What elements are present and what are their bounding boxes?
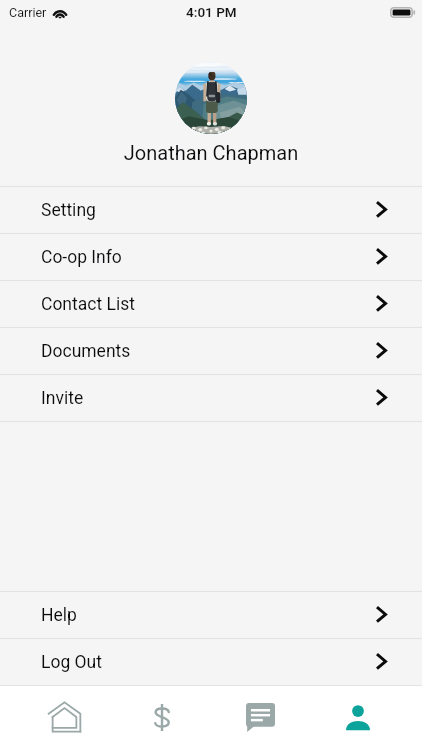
staticText: 4:01 PM (186, 4, 237, 20)
button[interactable]: Invite (0, 375, 422, 421)
staticText: Help (41, 605, 77, 626)
button[interactable]: Help (0, 592, 422, 638)
staticText: Setting (41, 200, 96, 221)
staticText: Contact List (41, 294, 135, 315)
staticText: Carrier (9, 5, 47, 20)
staticText: Log Out (41, 652, 102, 673)
staticText: Invite (41, 388, 84, 409)
staticText: Co-op Info (41, 247, 122, 268)
button[interactable]: Profile photo (175, 62, 247, 134)
button[interactable]: Payments (113, 686, 211, 748)
staticText: Jonathan Chapman (0, 141, 422, 164)
button[interactable]: Contact List (0, 281, 422, 327)
button[interactable]: Profile (309, 686, 407, 748)
button[interactable]: Setting (0, 187, 422, 233)
button[interactable]: Documents (0, 328, 422, 374)
button[interactable]: Messages (211, 686, 309, 748)
button[interactable]: Log Out (0, 639, 422, 685)
button[interactable]: Co-op Info (0, 234, 422, 280)
staticText: Documents (41, 341, 131, 362)
button[interactable]: Home (15, 686, 113, 748)
